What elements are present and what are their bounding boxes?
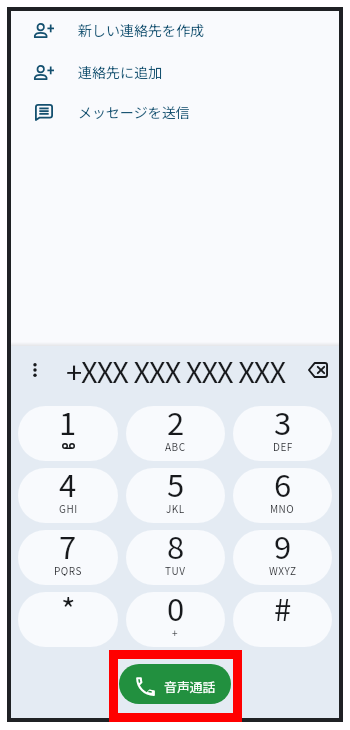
staticText: 2 bbox=[167, 406, 185, 444]
staticText: GHI bbox=[59, 501, 78, 514]
staticText: 1 bbox=[59, 406, 77, 444]
button[interactable]: 音声通話 bbox=[119, 664, 231, 704]
staticText: # bbox=[274, 592, 292, 630]
staticText: 音声通話 bbox=[164, 677, 216, 696]
staticText: DEF bbox=[273, 439, 293, 452]
button[interactable]: 連絡先に追加 bbox=[11, 52, 339, 92]
staticText: 4 bbox=[59, 468, 77, 506]
staticText: 8 bbox=[167, 530, 185, 568]
staticText: 新しい連絡先を作成 bbox=[78, 20, 204, 40]
staticText: 5 bbox=[167, 468, 185, 506]
staticText: ABC bbox=[165, 439, 186, 452]
button[interactable]: 新しい連絡先を作成 bbox=[11, 10, 339, 50]
staticText: 7 bbox=[59, 530, 77, 568]
staticText: JKL bbox=[166, 501, 185, 514]
button[interactable]: メッセージを送信 bbox=[11, 92, 339, 132]
button[interactable]: 7 bbox=[18, 530, 118, 585]
staticText: メッセージを送信 bbox=[78, 102, 190, 122]
staticText: 6 bbox=[274, 468, 292, 506]
button[interactable]: 9 bbox=[233, 530, 332, 585]
staticText: MNO bbox=[270, 501, 295, 514]
staticText: * bbox=[61, 592, 76, 630]
button[interactable]: # bbox=[233, 592, 332, 647]
button[interactable]: Backspace bbox=[303, 355, 333, 385]
button[interactable]: 5 bbox=[126, 468, 225, 523]
staticText: 連絡先に追加 bbox=[78, 62, 162, 82]
button[interactable]: 2 bbox=[126, 406, 225, 461]
button[interactable]: 3 bbox=[233, 406, 332, 461]
button[interactable]: 0 bbox=[126, 592, 225, 647]
button[interactable]: 8 bbox=[126, 530, 225, 585]
staticText: 0 bbox=[167, 592, 185, 630]
button[interactable]: 4 bbox=[18, 468, 118, 523]
button[interactable]: 1 bbox=[18, 406, 118, 461]
staticText: 9 bbox=[274, 530, 292, 568]
staticText: + bbox=[172, 625, 179, 638]
staticText: WXYZ bbox=[269, 563, 297, 576]
staticText: +XXX XXX XXX XXX bbox=[66, 349, 285, 391]
button[interactable]: 6 bbox=[233, 468, 332, 523]
button[interactable]: More options bbox=[20, 355, 50, 385]
button[interactable]: * bbox=[18, 592, 118, 647]
staticText: PQRS bbox=[54, 563, 82, 576]
staticText: 3 bbox=[274, 406, 292, 444]
staticText: TUV bbox=[165, 563, 186, 576]
